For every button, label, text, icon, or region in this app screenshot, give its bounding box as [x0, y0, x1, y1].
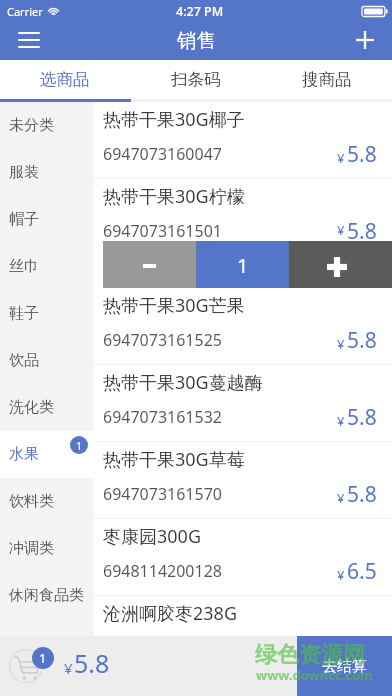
button[interactable]: 饮品	[0, 337, 94, 384]
staticText: 热带干果30G草莓	[103, 447, 245, 472]
button[interactable]: 选商品	[0, 60, 130, 99]
staticText: 绿色资源网	[255, 641, 365, 669]
button[interactable]: Cart	[9, 649, 43, 683]
staticText: 6947073161570	[103, 483, 222, 505]
button[interactable]: 水果	[0, 431, 94, 478]
staticText: 热带干果30G芒果	[103, 293, 245, 318]
button[interactable]: 1	[196, 241, 289, 288]
staticText: ¥	[337, 221, 345, 239]
staticText: ¥	[337, 566, 345, 584]
button[interactable]: 休闲食品类	[0, 572, 94, 619]
button[interactable]: 冲调类	[0, 525, 94, 572]
button[interactable]: 热带干果30G芒果	[94, 288, 392, 365]
button[interactable]: 鞋子	[0, 290, 94, 337]
staticText: 热带干果30G椰子	[103, 107, 245, 132]
staticText: 休闲食品类	[9, 586, 84, 605]
button[interactable]: 热带干果30G柠檬	[94, 179, 392, 288]
staticText: 水果	[9, 445, 39, 464]
button[interactable]: 热带干果30G蔓越酶	[94, 365, 392, 442]
staticText: 1	[39, 649, 47, 667]
button[interactable]: 丝巾	[0, 243, 94, 290]
button[interactable]: 去结算	[297, 636, 392, 696]
button[interactable]: 搜商品	[261, 60, 392, 99]
button[interactable]: 洗化类	[0, 384, 94, 431]
staticText: 冲调类	[9, 539, 54, 558]
button[interactable]: Increase	[289, 241, 392, 288]
staticText: 5.8	[347, 403, 377, 432]
staticText: ¥	[337, 412, 345, 430]
staticText: 热带干果30G蔓越酶	[103, 370, 263, 395]
staticText: 6947073161501	[103, 220, 222, 241]
staticText: 扫条码	[171, 69, 221, 90]
staticText: ¥	[337, 149, 345, 167]
staticText: 5.8	[347, 480, 377, 509]
staticText: 洗化类	[9, 398, 54, 417]
staticText: 搜商品	[302, 69, 352, 90]
staticText: 6947073161525	[103, 329, 222, 351]
button[interactable]: Add	[338, 22, 392, 60]
staticText: 6947073161532	[103, 406, 222, 428]
button[interactable]: 热带干果30G草莓	[94, 442, 392, 519]
staticText: www.downcc.com	[256, 666, 373, 684]
staticText: 饮料类	[9, 492, 54, 511]
staticText: 6947073160047	[103, 143, 222, 165]
staticText: 5.8	[347, 140, 377, 169]
staticText: 1	[237, 252, 249, 279]
staticText: 选商品	[40, 69, 90, 90]
staticText: 去结算	[322, 657, 367, 676]
staticText: 5.8	[74, 646, 110, 680]
staticText: 服装	[9, 163, 39, 182]
staticText: ¥	[337, 335, 345, 353]
staticText: 沧洲啊胶枣238G	[103, 601, 237, 626]
staticText: 枣康园300G	[103, 524, 201, 549]
staticText: 5.8	[347, 217, 377, 241]
button[interactable]: 热带干果30G椰子	[94, 102, 392, 179]
button[interactable]: 沧洲啊胶枣238G	[94, 596, 392, 636]
staticText: 鞋子	[9, 304, 39, 323]
button[interactable]: 未分类	[0, 102, 94, 149]
staticText: ¥	[64, 658, 73, 678]
staticText: 丝巾	[9, 257, 39, 276]
staticText: 1	[76, 438, 83, 453]
staticText: 未分类	[9, 116, 54, 135]
staticText: 4:27 PM	[176, 3, 224, 20]
staticText: ¥	[337, 489, 345, 507]
staticText: 饮品	[9, 351, 39, 370]
staticText: 帽子	[9, 210, 39, 229]
staticText: 销售	[177, 28, 216, 53]
staticText: Carrier	[7, 4, 43, 19]
staticText: 6.5	[347, 557, 377, 586]
staticText: 6948114200128	[103, 560, 222, 582]
button[interactable]: 扫条码	[130, 60, 261, 99]
button[interactable]: 服装	[0, 149, 94, 196]
staticText: 5.8	[347, 326, 377, 355]
button[interactable]: Decrease	[103, 241, 196, 288]
button[interactable]: 枣康园300G	[94, 519, 392, 596]
button[interactable]: 帽子	[0, 196, 94, 243]
button[interactable]: 饮料类	[0, 478, 94, 525]
staticText: 热带干果30G柠檬	[103, 184, 245, 209]
button[interactable]: Menu	[0, 22, 54, 60]
